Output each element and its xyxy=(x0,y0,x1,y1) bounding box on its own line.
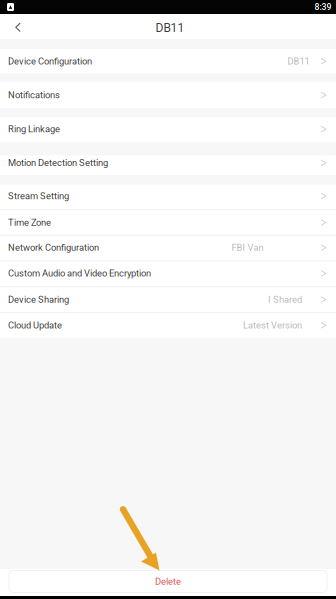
staticText: Time Zone xyxy=(8,217,51,228)
button[interactable]: Time Zone xyxy=(0,210,336,235)
staticText: Network Configuration xyxy=(8,242,99,253)
staticText: DB11 xyxy=(155,21,184,35)
staticText: Motion Detection Setting xyxy=(8,157,108,168)
button[interactable]: Motion Detection Setting xyxy=(0,155,336,175)
button[interactable]: Device Sharing xyxy=(0,287,336,312)
staticText: Notifications xyxy=(8,89,60,100)
staticText: Ring Linkage xyxy=(8,124,60,134)
staticText: Device Configuration xyxy=(8,56,92,67)
button[interactable]: Delete xyxy=(9,570,327,592)
button[interactable]: Ring Linkage xyxy=(0,117,336,142)
staticText: I Shared xyxy=(268,294,302,305)
button[interactable]: Network Configuration xyxy=(0,236,336,261)
button[interactable]: Notifications xyxy=(0,82,336,108)
staticText: Stream Setting xyxy=(8,191,69,202)
button[interactable]: Custom Audio and Video Encryption xyxy=(0,262,336,286)
staticText: Latest Version xyxy=(243,320,302,331)
staticText: Cloud Update xyxy=(8,320,62,331)
staticText: FBI Van xyxy=(231,242,263,253)
button[interactable]: Back xyxy=(0,14,34,39)
staticText: 8:39 xyxy=(314,2,331,12)
button[interactable]: Device Configuration xyxy=(0,49,336,73)
staticText: DB11 xyxy=(287,56,309,67)
button[interactable]: Cloud Update xyxy=(0,313,336,338)
staticText: Delete xyxy=(155,576,181,587)
button[interactable]: Stream Setting xyxy=(0,184,336,209)
staticText: Device Sharing xyxy=(8,294,69,305)
staticText: Custom Audio and Video Encryption xyxy=(8,268,151,279)
